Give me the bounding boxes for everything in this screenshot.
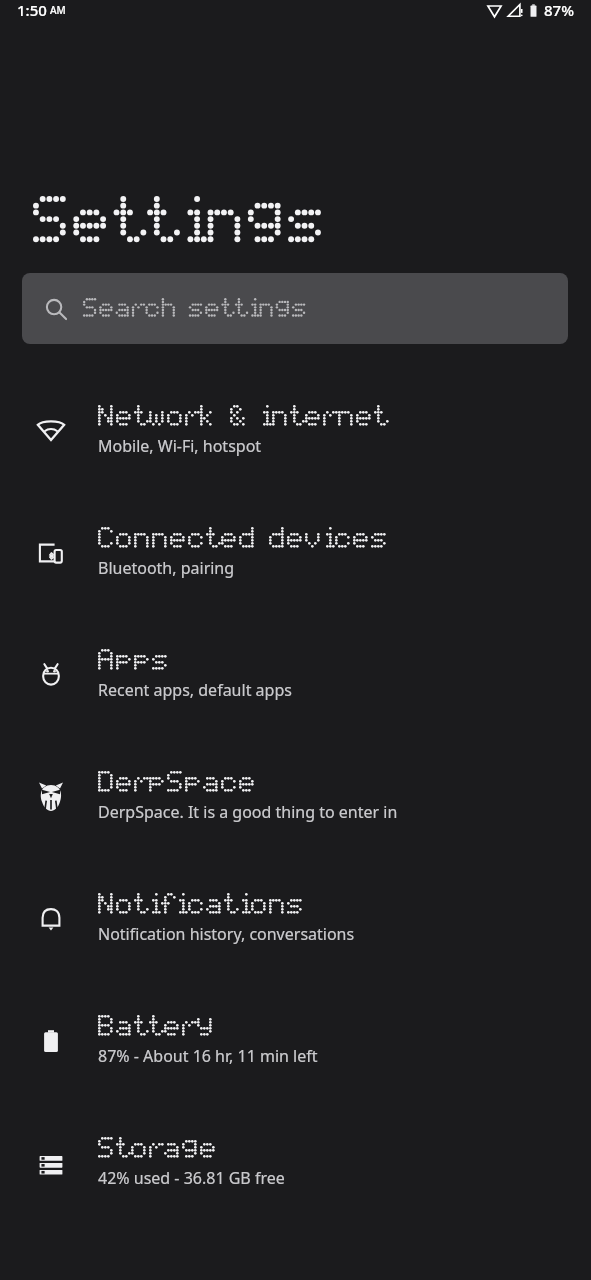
staticText: Bluetooth, pairing bbox=[98, 557, 235, 579]
button[interactable] bbox=[22, 273, 568, 344]
staticText: Notification history, conversations bbox=[98, 923, 355, 945]
button[interactable]: Notification history, conversations bbox=[0, 858, 591, 980]
button[interactable]: 87% - About 16 hr, 11 min left bbox=[0, 980, 591, 1102]
staticText: Recent apps, default apps bbox=[98, 679, 292, 701]
staticText: 1:50 bbox=[17, 0, 47, 20]
staticText: 87% - About 16 hr, 11 min left bbox=[98, 1045, 318, 1067]
staticText: AM bbox=[50, 3, 66, 17]
button[interactable]: Mobile, Wi-Fi, hotspot bbox=[0, 370, 591, 492]
staticText: 87% bbox=[544, 0, 574, 20]
button[interactable]: 42% used - 36.81 GB free bbox=[0, 1102, 591, 1224]
button[interactable]: Recent apps, default apps bbox=[0, 614, 591, 736]
staticText: DerpSpace. It is a good thing to enter i… bbox=[98, 801, 398, 823]
button[interactable]: Bluetooth, pairing bbox=[0, 492, 591, 614]
button[interactable]: DerpSpace. It is a good thing to enter i… bbox=[0, 736, 591, 858]
staticText: 42% used - 36.81 GB free bbox=[98, 1167, 285, 1189]
staticText: Mobile, Wi-Fi, hotspot bbox=[98, 435, 262, 457]
